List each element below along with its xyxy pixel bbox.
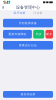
button[interactable]: 重新扫描网络: [3, 30, 32, 38]
staticText: 蓝牙连接: [13, 11, 25, 14]
staticText: 保存并应用: [20, 93, 35, 96]
button[interactable]: Back: [0, 5, 7, 10]
staticText: 9:41: [3, 0, 10, 5]
button[interactable]: 断开: [45, 30, 53, 38]
staticText: 重新扫描网络: [8, 33, 26, 36]
staticText: 开始检测设备: [19, 21, 37, 25]
staticText: 同步: [36, 33, 42, 36]
staticText: 已连接: [33, 11, 42, 14]
button[interactable]: 保存并应用: [3, 91, 53, 98]
staticText: 查看运行日志: [19, 44, 37, 47]
button[interactable]: 开始检测设备: [3, 19, 53, 27]
staticText: 断开: [46, 33, 52, 36]
button[interactable]: 同步: [33, 30, 44, 38]
staticText: 设备管理中心: [16, 5, 40, 10]
button[interactable]: 查看运行日志: [3, 41, 53, 50]
